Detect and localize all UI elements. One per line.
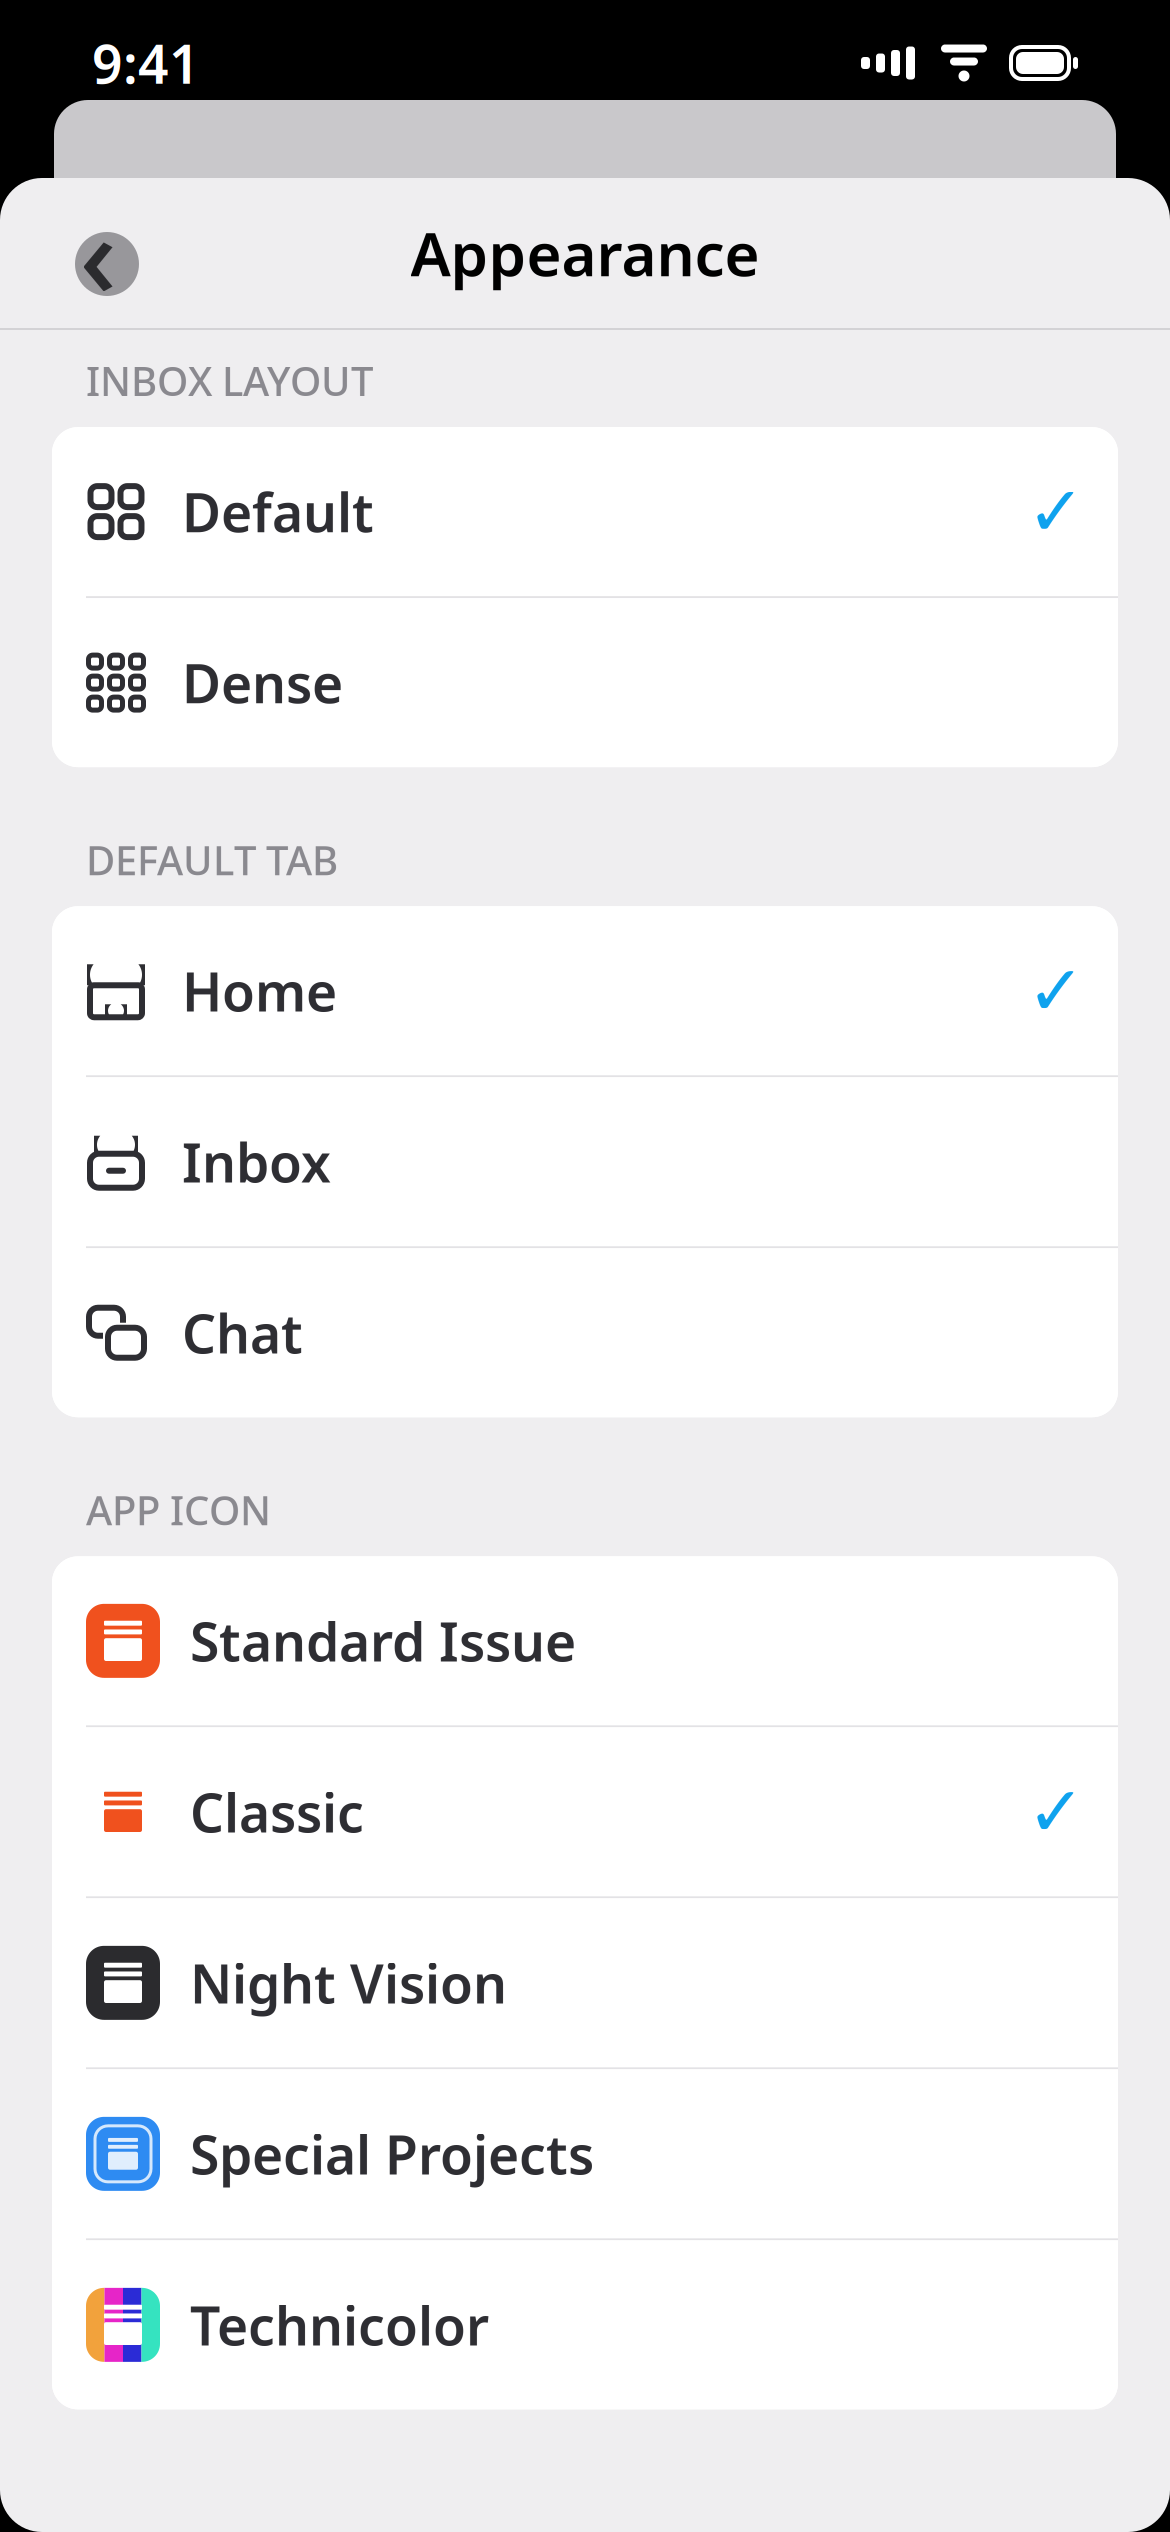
staticText: Default <box>182 476 374 547</box>
staticText: Chat <box>182 1297 303 1368</box>
staticText: ✓ <box>1027 951 1085 1030</box>
button[interactable]: Classic <box>52 1727 1118 1898</box>
button[interactable]: Back <box>46 201 150 305</box>
staticText: 9:41 <box>92 28 200 98</box>
staticText: Home <box>182 955 337 1026</box>
staticText: INBOX LAYOUT <box>86 354 373 407</box>
staticText: DEFAULT TAB <box>86 833 338 886</box>
staticText: Dense <box>182 647 343 718</box>
button[interactable]: Dense <box>52 598 1118 767</box>
button[interactable]: Inbox <box>52 1077 1118 1248</box>
staticText: Standard Issue <box>190 1605 576 1676</box>
staticText: Inbox <box>182 1126 331 1197</box>
staticText: Special Projects <box>190 2118 594 2189</box>
staticText: Appearance <box>410 213 759 293</box>
staticText: Night Vision <box>190 1947 507 2018</box>
staticText: Technicolor <box>190 2289 489 2360</box>
button[interactable]: Home <box>52 906 1118 1077</box>
staticText: APP ICON <box>86 1483 271 1536</box>
staticText: ✓ <box>1027 472 1085 551</box>
button[interactable]: Standard Issue <box>52 1556 1118 1727</box>
button[interactable]: Chat <box>52 1248 1118 1417</box>
button[interactable]: Technicolor <box>52 2240 1118 2409</box>
button[interactable]: Default <box>52 427 1118 598</box>
button[interactable]: Night Vision <box>52 1898 1118 2069</box>
staticText: Classic <box>190 1776 364 1847</box>
staticText: ✓ <box>1027 1772 1085 1851</box>
button[interactable]: Special Projects <box>52 2069 1118 2240</box>
staticText: ‹ <box>79 177 116 329</box>
